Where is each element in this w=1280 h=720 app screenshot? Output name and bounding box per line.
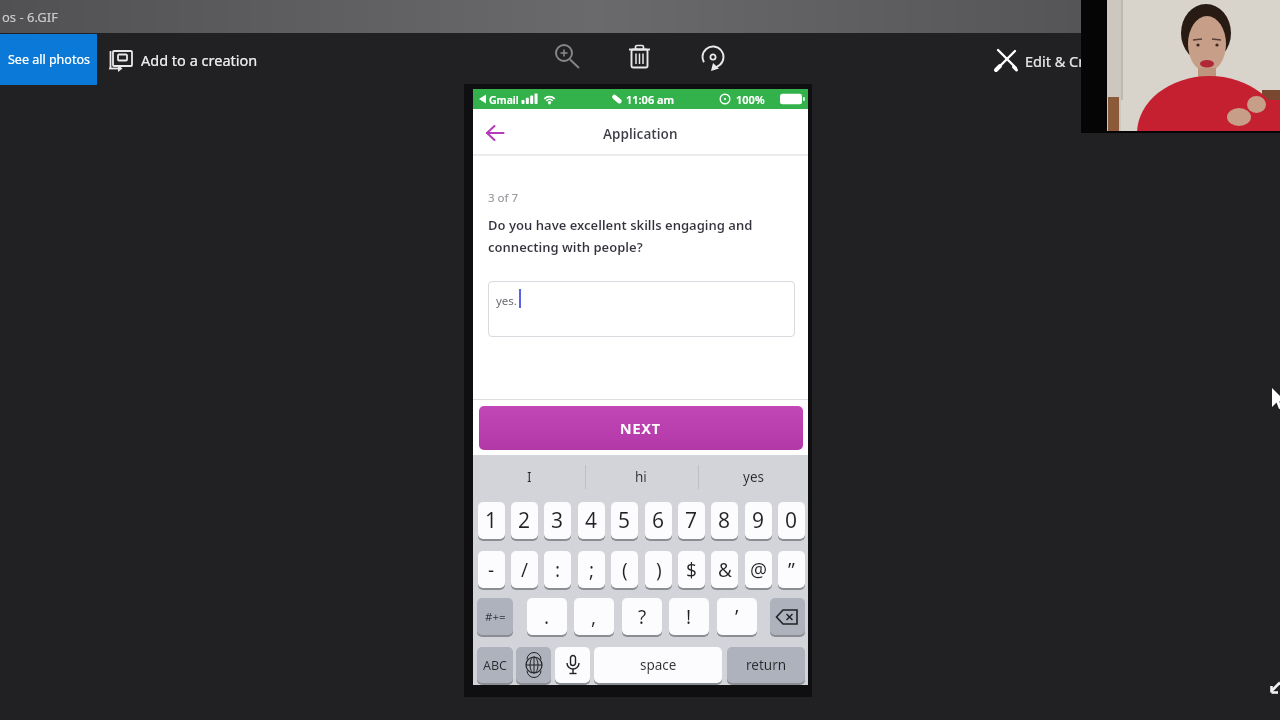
staticText: - bbox=[488, 557, 495, 583]
button[interactable]: ? bbox=[622, 598, 662, 635]
button[interactable]: : bbox=[544, 551, 571, 588]
button[interactable]: & bbox=[711, 551, 738, 588]
button[interactable]: ; bbox=[578, 551, 605, 588]
button[interactable]: Add to a creation bbox=[102, 34, 247, 85]
staticText: ” bbox=[788, 557, 795, 583]
button[interactable] bbox=[479, 119, 511, 147]
staticText: Add to a creation bbox=[141, 50, 258, 70]
button[interactable]: . bbox=[527, 598, 567, 635]
button[interactable]: ! bbox=[669, 598, 709, 635]
button[interactable]: NEXT bbox=[479, 406, 803, 450]
staticText: 7 bbox=[685, 506, 698, 535]
staticText: 6 bbox=[652, 506, 665, 535]
staticText: 3 bbox=[551, 506, 564, 535]
staticText: 2 bbox=[518, 506, 531, 535]
button[interactable]: 6 bbox=[645, 502, 672, 539]
button[interactable] bbox=[546, 37, 586, 77]
staticText: 5 bbox=[618, 506, 631, 535]
staticText: NEXT bbox=[620, 418, 662, 438]
button[interactable]: $ bbox=[678, 551, 705, 588]
button[interactable] bbox=[516, 647, 551, 683]
button[interactable]: 4 bbox=[578, 502, 605, 539]
staticText: os - 6.GIF bbox=[2, 8, 58, 26]
staticText: ? bbox=[638, 604, 647, 630]
staticText: ! bbox=[686, 604, 692, 630]
button[interactable] bbox=[555, 647, 590, 683]
button[interactable]: ’ bbox=[717, 598, 757, 635]
staticText: I bbox=[527, 468, 532, 486]
button[interactable]: ” bbox=[778, 551, 805, 588]
staticText: 9 bbox=[752, 506, 765, 535]
button[interactable]: 1 bbox=[478, 502, 505, 539]
staticText: @ bbox=[750, 557, 768, 583]
staticText: ; bbox=[589, 557, 595, 583]
button[interactable]: 2 bbox=[511, 502, 538, 539]
button[interactable]: @ bbox=[745, 551, 772, 588]
staticText: , bbox=[591, 604, 597, 630]
staticText: 3 of 7 bbox=[488, 190, 519, 206]
staticText: yes bbox=[743, 468, 764, 486]
staticText: return bbox=[746, 656, 787, 674]
staticText: $ bbox=[686, 557, 697, 583]
button[interactable] bbox=[770, 598, 805, 635]
staticText: yes. bbox=[496, 293, 517, 309]
staticText: Edit & Creat bbox=[1025, 51, 1081, 71]
staticText: #+= bbox=[485, 609, 506, 625]
button[interactable]: ) bbox=[645, 551, 672, 588]
button[interactable]: Edit & Creat bbox=[988, 34, 1081, 85]
button[interactable]: 0 bbox=[778, 502, 805, 539]
staticText: ’ bbox=[735, 604, 739, 630]
button[interactable]: return bbox=[727, 647, 805, 683]
staticText: / bbox=[521, 557, 529, 583]
staticText: ) bbox=[656, 557, 662, 583]
button[interactable]: 3 bbox=[544, 502, 571, 539]
button[interactable]: #+= bbox=[477, 598, 513, 635]
staticText: : bbox=[555, 557, 561, 583]
staticText: . bbox=[544, 604, 550, 630]
button[interactable]: 9 bbox=[745, 502, 772, 539]
button[interactable]: / bbox=[511, 551, 538, 588]
staticText: 11:06 am bbox=[626, 92, 675, 107]
staticText: & bbox=[718, 557, 732, 583]
button[interactable]: 5 bbox=[611, 502, 638, 539]
staticText: space bbox=[640, 656, 677, 674]
staticText: ABC bbox=[483, 657, 508, 674]
staticText: 0 bbox=[785, 506, 798, 535]
button[interactable]: ( bbox=[611, 551, 638, 588]
staticText: ( bbox=[622, 557, 628, 583]
button[interactable] bbox=[693, 37, 733, 77]
staticText: hi bbox=[635, 468, 647, 486]
button[interactable]: , bbox=[574, 598, 614, 635]
staticText: See all photos bbox=[8, 51, 90, 68]
button[interactable] bbox=[488, 281, 795, 337]
staticText: connecting with people? bbox=[488, 238, 643, 256]
staticText: 4 bbox=[585, 506, 598, 535]
staticText: Application bbox=[603, 125, 678, 143]
button[interactable]: 8 bbox=[711, 502, 738, 539]
button[interactable] bbox=[619, 37, 659, 77]
button[interactable]: 7 bbox=[678, 502, 705, 539]
staticText: 1 bbox=[485, 506, 498, 535]
staticText: Gmail bbox=[489, 93, 519, 107]
button[interactable]: space bbox=[594, 647, 722, 683]
staticText: Do you have excellent skills engaging an… bbox=[488, 216, 753, 234]
staticText: 8 bbox=[718, 506, 731, 535]
button[interactable]: ABC bbox=[477, 647, 513, 683]
staticText: 100% bbox=[736, 92, 765, 107]
button[interactable]: See all photos bbox=[0, 34, 97, 85]
button[interactable]: - bbox=[478, 551, 505, 588]
